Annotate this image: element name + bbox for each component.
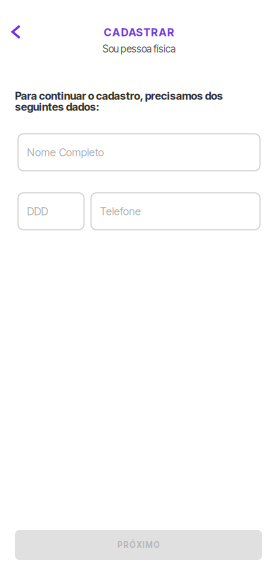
staticText: Para continuar o cadastro, precisamos do… bbox=[15, 89, 223, 102]
button[interactable]: PRÓXIMO bbox=[15, 530, 262, 560]
staticText: CADASTRAR bbox=[104, 26, 174, 39]
button[interactable]: Back bbox=[0, 0, 32, 49]
staticText: Nome Completo bbox=[27, 146, 104, 159]
staticText: PRÓXIMO bbox=[117, 540, 159, 550]
staticText: Sou pessoa física bbox=[102, 43, 175, 55]
staticText: Telefone bbox=[100, 205, 141, 218]
staticText: seguintes dados: bbox=[15, 100, 99, 113]
staticText: DDD bbox=[27, 205, 48, 218]
